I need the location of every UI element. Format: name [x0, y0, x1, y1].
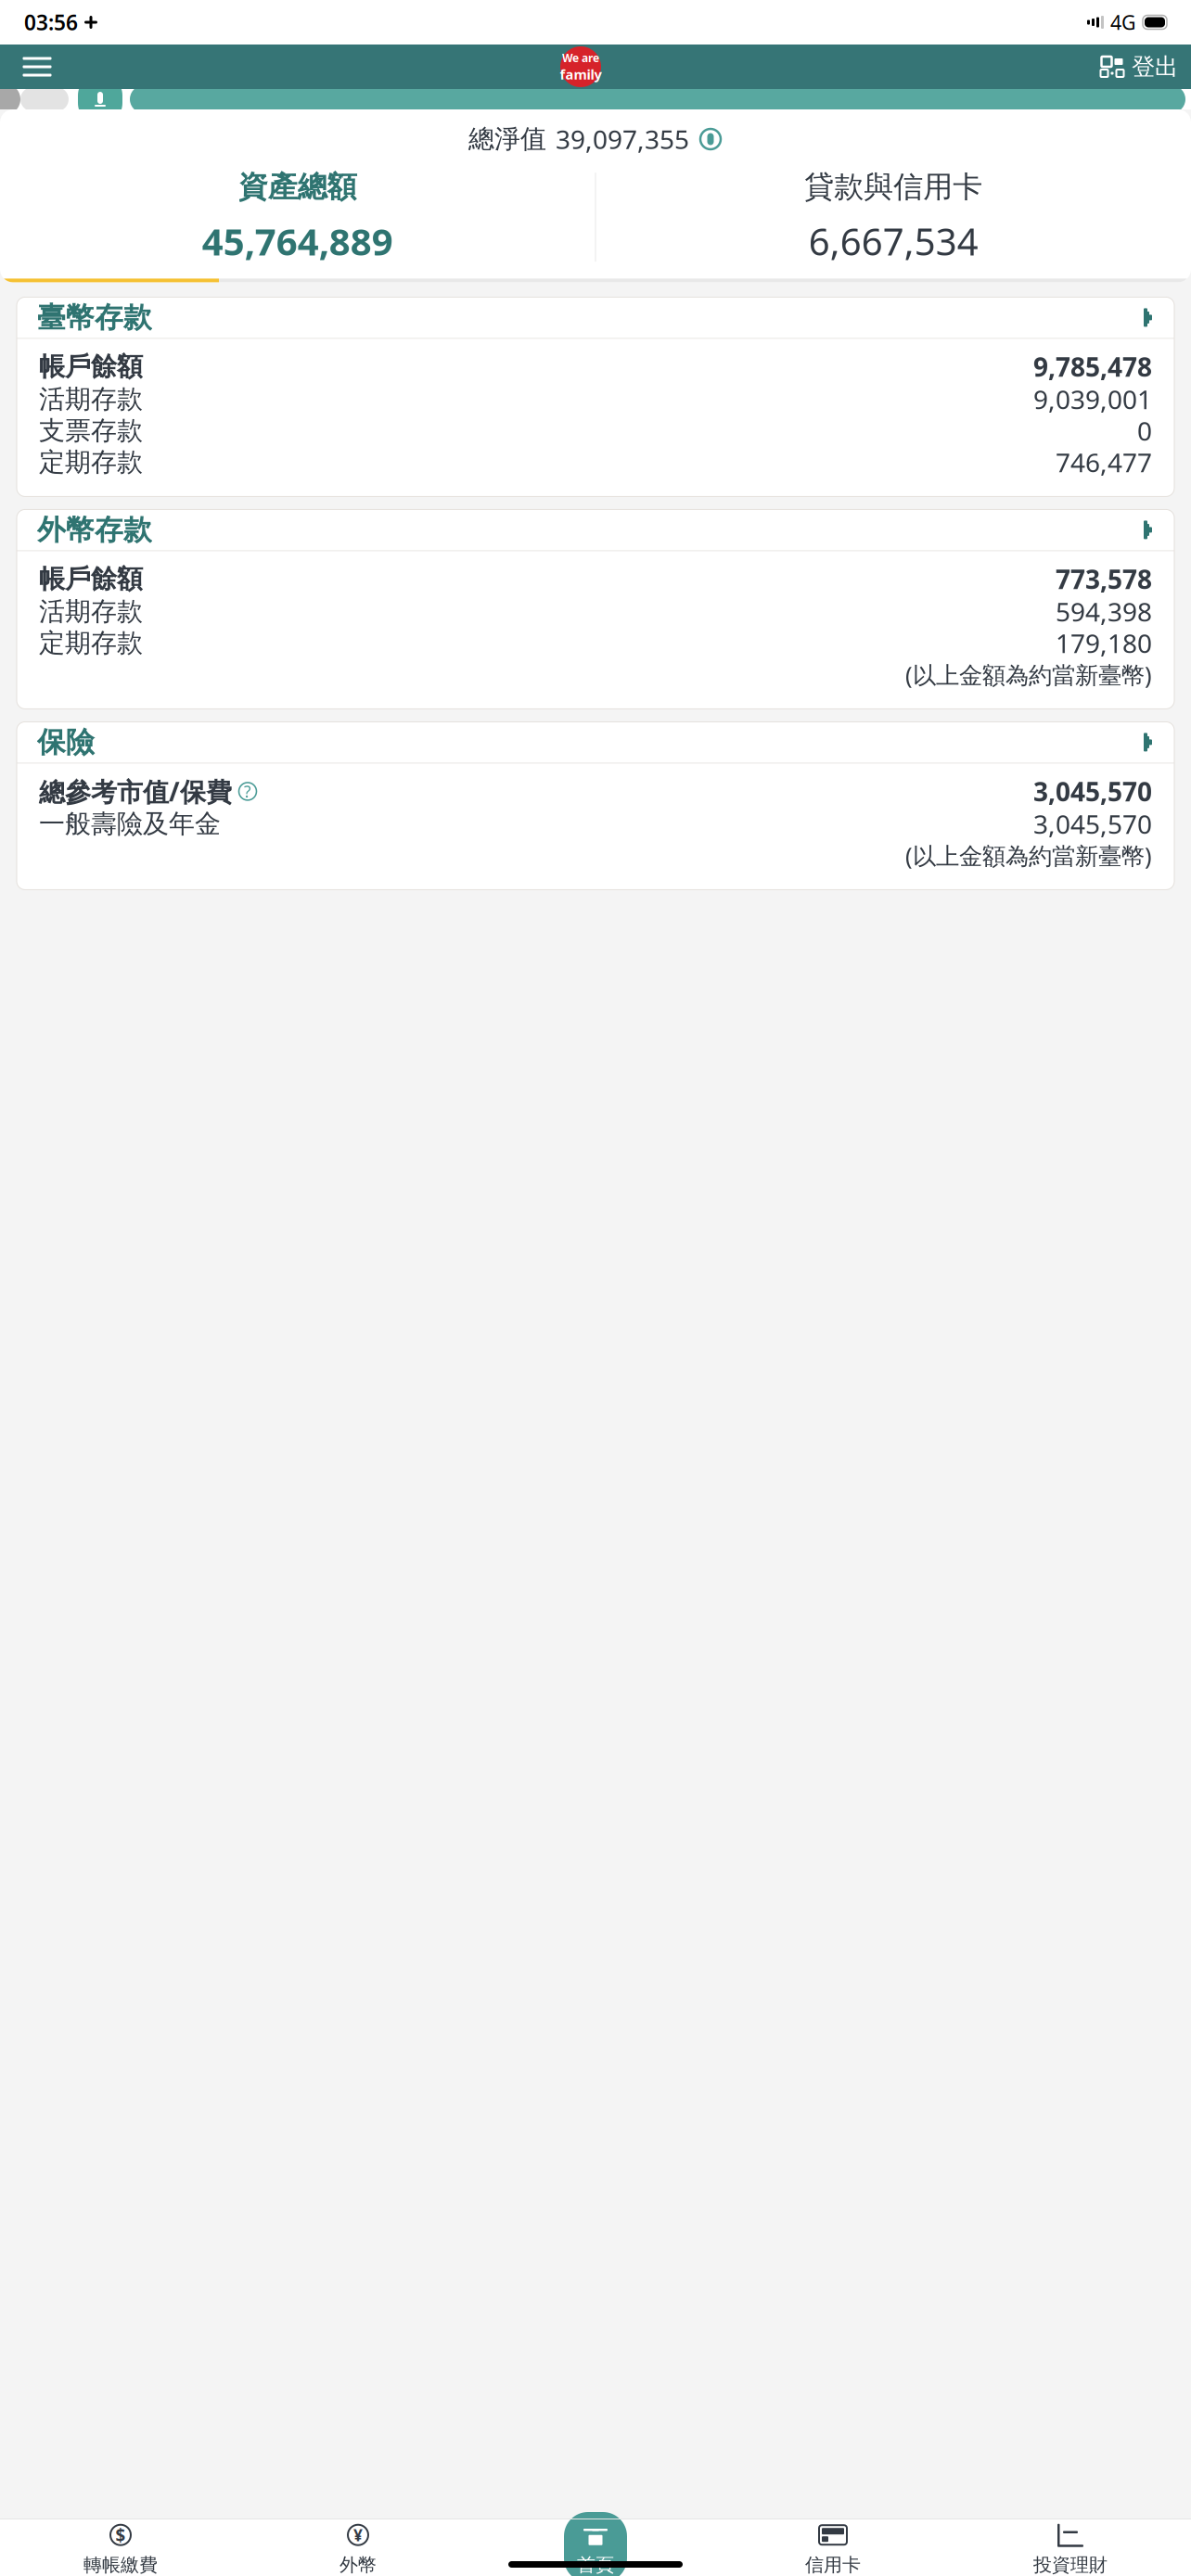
- button[interactable]: ¥: [239, 2519, 477, 2576]
- button[interactable]: 選單: [13, 45, 61, 89]
- staticText: 179,180: [1056, 626, 1152, 660]
- staticText: 9,785,478: [1033, 349, 1152, 384]
- staticText: 定期存款: [39, 446, 143, 478]
- staticText: 3,045,570: [1033, 807, 1152, 841]
- staticText: We are: [562, 50, 599, 65]
- staticText: 帳戶餘額: [39, 351, 143, 383]
- staticText: 0: [1137, 413, 1152, 448]
- staticText: 746,477: [1056, 445, 1152, 479]
- staticText: 773,578: [1056, 562, 1152, 596]
- staticText: 定期存款: [39, 627, 143, 659]
- staticText: 外幣: [339, 2553, 377, 2576]
- button[interactable]: 保險: [17, 722, 1174, 763]
- staticText: 投資理財: [1033, 2553, 1108, 2576]
- button[interactable]: 登出: [1100, 52, 1178, 81]
- staticText: 活期存款: [39, 596, 143, 627]
- staticText: 保險: [37, 725, 95, 760]
- staticText: 一般壽險及年金: [39, 808, 221, 840]
- staticText: 首頁: [577, 2553, 614, 2576]
- staticText: 貸款與信用卡: [804, 169, 982, 205]
- staticText: $: [115, 2523, 126, 2546]
- staticText: 支票存款: [39, 415, 143, 447]
- staticText: (以上金額為約當新臺幣): [905, 840, 1152, 871]
- button[interactable]: $: [2, 2519, 239, 2576]
- button[interactable]: 臺幣存款: [17, 297, 1174, 338]
- staticText: 3,045,570: [1033, 774, 1152, 809]
- staticText: ¥: [353, 2524, 363, 2546]
- staticText: 轉帳繳費: [83, 2553, 158, 2576]
- staticText: 594,398: [1056, 594, 1152, 629]
- staticText: 03:56: [24, 8, 78, 36]
- staticText: 帳戶餘額: [39, 563, 143, 595]
- staticText: 4G: [1110, 9, 1136, 35]
- staticText: 信用卡: [805, 2553, 861, 2576]
- button[interactable]: 信用卡: [714, 2519, 952, 2576]
- staticText: 活期存款: [39, 383, 143, 415]
- staticText: family: [560, 65, 602, 83]
- button[interactable]: 首頁: [477, 2519, 714, 2576]
- staticText: (以上金額為約當新臺幣): [905, 659, 1152, 690]
- staticText: 登出: [1132, 52, 1178, 81]
- button[interactable]: 投資理財: [952, 2519, 1189, 2576]
- staticText: 外幣存款: [37, 512, 152, 547]
- button[interactable]: 外幣存款: [17, 509, 1174, 550]
- staticText: 總參考市值/保費: [39, 774, 232, 809]
- staticText: 9,039,001: [1033, 382, 1152, 416]
- button[interactable]: 顯示或隱藏金額: [698, 127, 723, 151]
- staticText: ?: [244, 781, 251, 802]
- staticText: 臺幣存款: [37, 300, 152, 335]
- staticText: 6,667,534: [809, 216, 978, 266]
- staticText: 資產總額: [238, 169, 357, 205]
- staticText: 總淨值: [468, 123, 546, 155]
- staticText: 39,097,355: [556, 122, 689, 156]
- staticText: 45,764,889: [202, 216, 393, 266]
